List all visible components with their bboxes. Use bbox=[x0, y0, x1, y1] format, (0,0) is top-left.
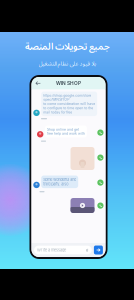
button[interactable]: Back bbox=[35, 80, 41, 86]
staticText: Shop online and get free help and work w… bbox=[47, 127, 85, 136]
staticText: Write a message bbox=[37, 248, 66, 252]
staticText: جميع تحويلات المنصة bbox=[24, 37, 109, 57]
staticText: https://shop.google.com/store spec/WINSH… bbox=[43, 93, 95, 114]
staticText: WIN SHOP bbox=[56, 80, 81, 86]
staticText: بلا قيود على نظام التشغيل bbox=[38, 58, 96, 70]
staticText: Some wonderful and third party, also bbox=[43, 177, 76, 186]
button[interactable]: Send bbox=[94, 245, 103, 254]
